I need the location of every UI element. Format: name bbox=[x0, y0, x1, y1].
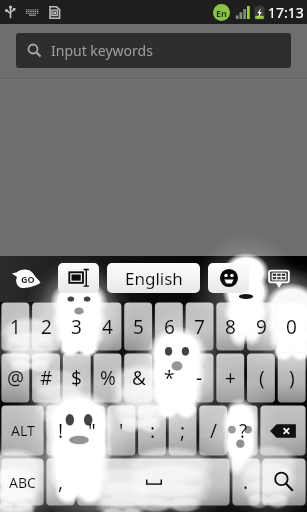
button[interactable]: Backspace bbox=[259, 404, 307, 457]
staticText: 7 bbox=[194, 314, 205, 340]
staticText: 0 bbox=[286, 314, 297, 340]
staticText: " bbox=[88, 418, 96, 444]
button[interactable]: Hide keyboard bbox=[262, 265, 296, 293]
staticText: ( bbox=[259, 365, 265, 391]
button[interactable]: Keyboard layout bbox=[58, 263, 99, 293]
button[interactable]: , bbox=[45, 457, 76, 507]
button[interactable]: " bbox=[76, 404, 107, 457]
button[interactable]: - bbox=[184, 352, 215, 404]
staticText: ALT bbox=[11, 421, 35, 440]
staticText: ! bbox=[58, 418, 64, 444]
staticText: GO bbox=[21, 273, 35, 285]
staticText: % bbox=[100, 365, 116, 391]
button[interactable]: 1 bbox=[0, 301, 31, 352]
staticText: 3 bbox=[71, 314, 82, 340]
staticText: En bbox=[216, 7, 227, 19]
staticText: 4 bbox=[102, 314, 113, 340]
button[interactable]: & bbox=[123, 352, 154, 404]
staticText: 17:13 bbox=[268, 3, 304, 22]
button[interactable]: ) bbox=[276, 352, 307, 404]
staticText: ) bbox=[289, 365, 295, 391]
staticText: Input keywords bbox=[51, 41, 153, 60]
button[interactable]: ABC bbox=[0, 457, 45, 507]
button[interactable]: * bbox=[154, 352, 185, 404]
staticText: 8 bbox=[225, 314, 236, 340]
button[interactable]: ' bbox=[106, 404, 137, 457]
staticText: # bbox=[40, 365, 53, 391]
staticText: $ bbox=[71, 365, 82, 391]
button[interactable]: 7 bbox=[184, 301, 215, 352]
button[interactable]: Search bbox=[261, 457, 307, 507]
button[interactable]: Input keywords bbox=[16, 33, 291, 68]
button[interactable]: Space bbox=[76, 457, 231, 507]
button[interactable]: + bbox=[215, 352, 246, 404]
button[interactable]: 5 bbox=[123, 301, 154, 352]
button[interactable]: $ bbox=[61, 352, 92, 404]
button[interactable]: 6 bbox=[154, 301, 185, 352]
button[interactable]: . bbox=[231, 457, 261, 507]
button[interactable]: ALT bbox=[0, 404, 45, 457]
staticText: ? bbox=[239, 418, 248, 444]
staticText: 2 bbox=[41, 314, 52, 340]
button[interactable]: % bbox=[92, 352, 123, 404]
button[interactable]: Emoji bbox=[208, 263, 249, 293]
button[interactable]: / bbox=[198, 404, 229, 457]
button[interactable]: 4 bbox=[92, 301, 123, 352]
button[interactable]: 8 bbox=[215, 301, 246, 352]
button[interactable]: # bbox=[31, 352, 62, 404]
button[interactable]: 3 bbox=[61, 301, 92, 352]
staticText: + bbox=[225, 365, 236, 391]
button[interactable]: ! bbox=[45, 404, 76, 457]
staticText: / bbox=[210, 418, 218, 444]
button[interactable]: : bbox=[137, 404, 168, 457]
button[interactable]: ? bbox=[228, 404, 259, 457]
button[interactable]: 9 bbox=[246, 301, 277, 352]
staticText: 9 bbox=[256, 314, 267, 340]
button[interactable]: 2 bbox=[31, 301, 62, 352]
staticText: - bbox=[196, 365, 203, 391]
staticText: English bbox=[125, 267, 183, 290]
staticText: 1 bbox=[10, 314, 21, 340]
button[interactable]: ( bbox=[246, 352, 277, 404]
staticText: 5 bbox=[133, 314, 144, 340]
staticText: : bbox=[150, 418, 156, 444]
button[interactable]: ; bbox=[167, 404, 198, 457]
button[interactable]: English bbox=[107, 263, 200, 293]
staticText: ; bbox=[180, 418, 186, 444]
button[interactable]: @ bbox=[0, 352, 31, 404]
staticText: * bbox=[164, 365, 175, 391]
staticText: ' bbox=[119, 418, 124, 444]
button[interactable]: GO Keyboard menu bbox=[11, 267, 41, 289]
staticText: ABC bbox=[9, 473, 36, 492]
staticText: 6 bbox=[164, 314, 175, 340]
staticText: . bbox=[243, 469, 249, 495]
staticText: , bbox=[58, 469, 64, 495]
staticText: & bbox=[132, 365, 146, 391]
staticText: @ bbox=[7, 365, 25, 391]
button[interactable]: 0 bbox=[276, 301, 307, 352]
